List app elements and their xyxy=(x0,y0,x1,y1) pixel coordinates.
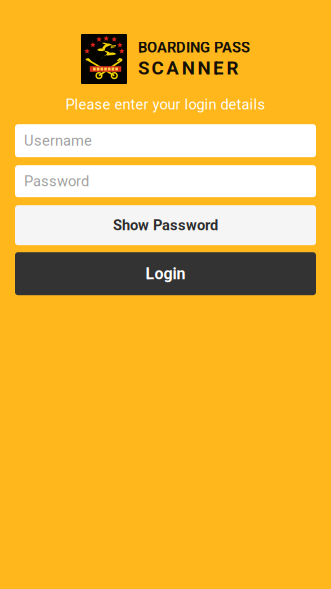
staticText: Please enter your login details xyxy=(65,96,265,113)
button[interactable]: Show Password xyxy=(15,205,316,245)
staticText: Login xyxy=(145,264,185,283)
staticText: Show Password xyxy=(113,217,218,234)
staticText: Username xyxy=(24,132,92,149)
button[interactable]: Login xyxy=(15,252,316,295)
staticText: SCANNER xyxy=(138,57,239,79)
staticText: BOARDING PASS xyxy=(138,39,250,56)
staticText: Password xyxy=(24,173,89,190)
